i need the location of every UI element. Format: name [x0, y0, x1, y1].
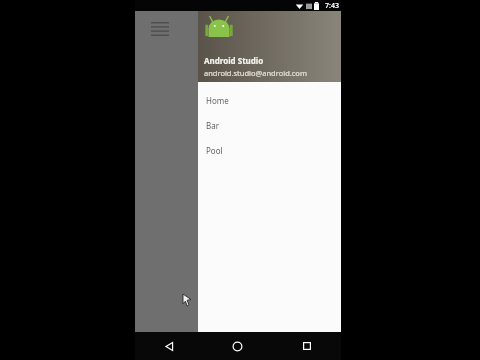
- button[interactable]: Open navigation drawer: [145, 17, 175, 41]
- button[interactable]: Pool: [198, 138, 341, 163]
- staticText: Pool: [206, 145, 223, 156]
- staticText: Android Studio: [204, 55, 264, 66]
- button[interactable]: Home: [198, 88, 341, 113]
- staticText: Home: [206, 95, 229, 106]
- button[interactable]: Bar: [198, 113, 341, 138]
- button[interactable]: Home: [203, 332, 272, 360]
- staticText: android.studio@android.com: [204, 68, 307, 78]
- button[interactable]: Recent apps: [272, 332, 341, 360]
- staticText: 7:43: [325, 1, 339, 11]
- button[interactable]: Back: [135, 332, 203, 360]
- staticText: Bar: [206, 120, 219, 131]
